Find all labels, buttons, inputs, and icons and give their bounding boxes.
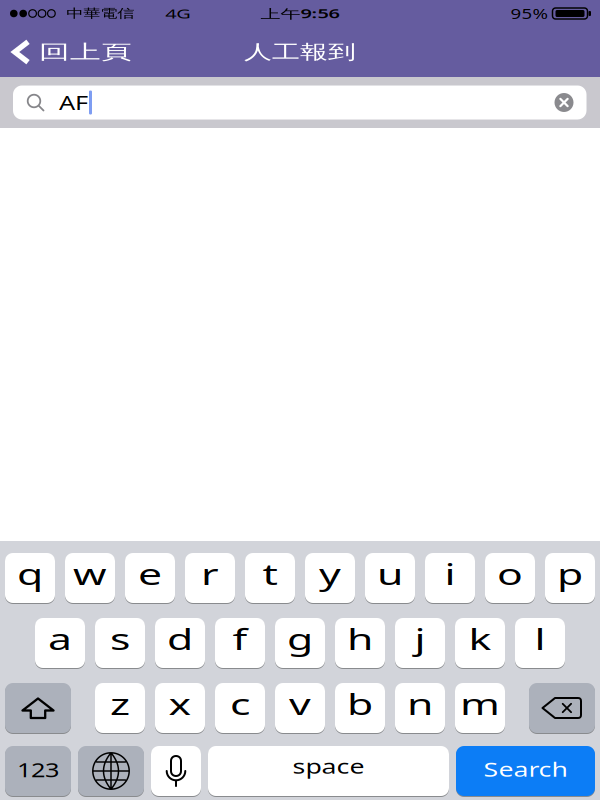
staticText: t [262,546,277,602]
button[interactable]: c [215,683,265,733]
staticText: Search [483,751,567,787]
button[interactable]: z [95,683,145,733]
staticText: q [17,546,43,602]
button[interactable]: 123 [5,746,71,796]
button[interactable]: f [215,618,265,668]
staticText: p [557,546,583,602]
button[interactable]: Clear text [554,93,573,112]
staticText: 95% [510,1,548,26]
staticText: g [287,611,313,667]
staticText: b [347,676,373,732]
button[interactable]: u [365,553,415,603]
button[interactable]: y [305,553,355,603]
button[interactable]: k [455,618,505,668]
button[interactable]: w [65,553,115,603]
button[interactable]: s [95,618,145,668]
button[interactable]: Search [456,746,595,796]
staticText: c [230,676,250,732]
button[interactable]: r [185,553,235,603]
staticText: r [201,546,219,602]
button[interactable]: j [395,618,445,668]
button[interactable]: i [425,553,475,603]
staticText: m [460,676,500,732]
button[interactable]: g [275,618,325,668]
staticText: 中華電信 [66,3,134,24]
staticText: 人工報到 [244,35,356,69]
button[interactable]: x [155,683,205,733]
staticText: v [289,676,311,732]
staticText: AF [59,86,88,119]
button[interactable]: q [5,553,55,603]
staticText: s [110,611,130,667]
staticText: w [73,546,107,602]
staticText: n [407,676,433,732]
staticText: o [497,546,523,602]
button[interactable]: n [395,683,445,733]
button[interactable]: a [35,618,85,668]
staticText: 123 [17,753,59,786]
staticText: e [138,546,162,602]
button[interactable]: t [245,553,295,603]
staticText: j [414,611,425,667]
button[interactable]: d [155,618,205,668]
button[interactable]: e [125,553,175,603]
button[interactable]: l [515,618,565,668]
staticText: k [468,611,491,667]
staticText: 上午9:56 [260,0,339,27]
button[interactable]: Back [0,33,132,71]
button[interactable]: Next keyboard [78,746,144,796]
button[interactable]: v [275,683,325,733]
staticText: l [534,611,545,667]
staticText: z [110,676,130,732]
button[interactable]: p [545,553,595,603]
staticText: 4G [165,0,191,27]
staticText: 回上頁 [39,33,132,71]
staticText: h [347,611,373,667]
staticText: u [377,546,403,602]
staticText: d [167,611,193,667]
staticText: i [444,546,455,602]
button[interactable]: o [485,553,535,603]
button[interactable]: space [208,746,449,796]
button[interactable]: m [455,683,505,733]
button[interactable]: Dictation [151,746,201,796]
button[interactable]: h [335,618,385,668]
button[interactable]: b [335,683,385,733]
button[interactable]: Delete [529,683,595,733]
button[interactable]: Shift [5,683,71,733]
staticText: x [168,676,191,732]
staticText: f [232,611,247,667]
staticText: space [292,748,364,784]
staticText: y [319,546,341,602]
staticText: a [48,611,72,667]
